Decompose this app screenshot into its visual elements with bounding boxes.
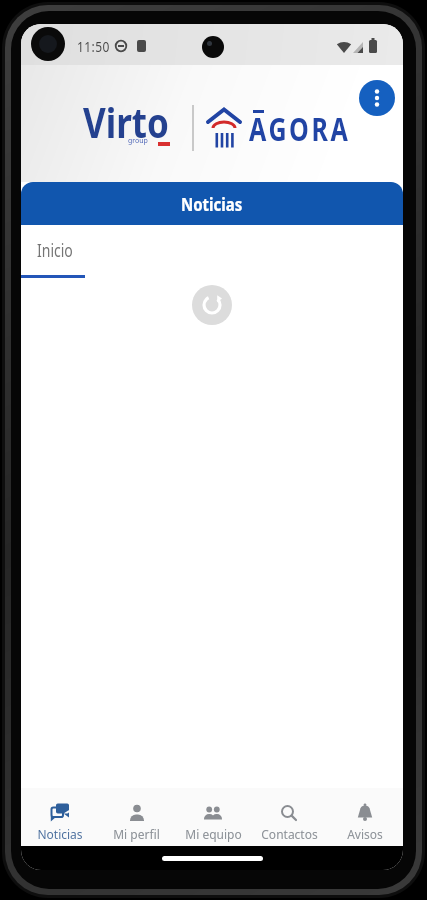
staticText: 11:50 <box>77 36 110 56</box>
staticText: Mi perfil <box>113 826 160 842</box>
staticText: Mi equipo <box>185 826 242 842</box>
staticText: Noticias <box>37 826 83 842</box>
staticText: Contactos <box>261 826 318 842</box>
button[interactable]: Mi perfil <box>98 788 175 846</box>
staticText: AGORA <box>249 106 351 150</box>
staticText: Noticias <box>181 192 243 216</box>
button[interactable]: Noticias <box>21 182 403 225</box>
staticText: Inicio <box>37 237 73 262</box>
button[interactable]: Avisos <box>327 788 403 846</box>
button[interactable]: Contactos <box>251 788 327 846</box>
button[interactable]: Inicio <box>37 240 73 259</box>
staticText: Avisos <box>347 826 383 842</box>
button[interactable]: Mi equipo <box>175 788 251 846</box>
button[interactable] <box>359 80 395 116</box>
staticText: group <box>128 136 148 146</box>
button[interactable]: Noticias <box>21 788 98 846</box>
staticText: Virto <box>83 95 169 151</box>
